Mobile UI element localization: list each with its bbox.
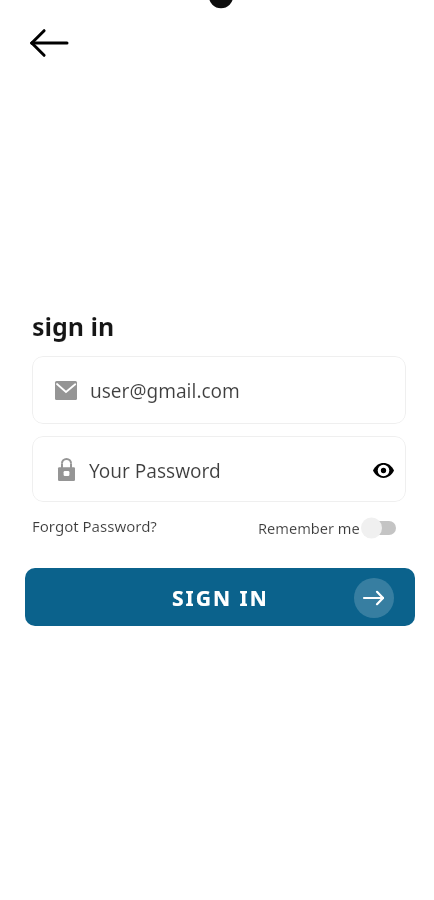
button[interactable]: Back [19, 19, 79, 79]
button[interactable]: Show password [367, 452, 401, 486]
button[interactable]: Forgot Password? [30, 514, 159, 538]
button[interactable]: Your Password [32, 436, 406, 502]
staticText: Your Password [89, 458, 221, 484]
staticText: SIGN IN [172, 584, 269, 613]
button[interactable]: Remember me [258, 514, 397, 542]
staticText: Forgot Password? [32, 516, 157, 536]
button[interactable]: user@gmail.com [32, 356, 406, 424]
staticText: sign in [32, 309, 115, 343]
button[interactable]: Remember me toggle [361, 516, 397, 540]
button[interactable]: SIGN IN [25, 568, 415, 626]
staticText: Remember me [258, 518, 360, 538]
other: Submit [354, 578, 394, 618]
staticText: user@gmail.com [90, 378, 240, 404]
